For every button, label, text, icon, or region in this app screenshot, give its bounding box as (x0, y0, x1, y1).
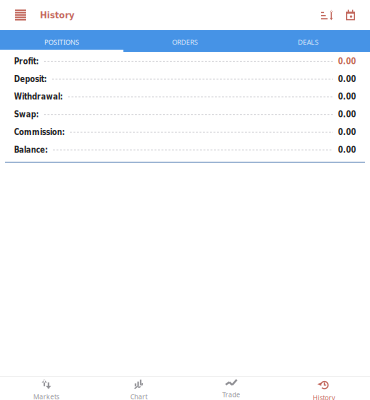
button[interactable]: DEALS (247, 30, 370, 52)
staticText: ORDERS (172, 37, 198, 47)
staticText: Markets (33, 392, 59, 400)
button[interactable]: Trade (185, 377, 277, 400)
staticText: POSITIONS (44, 37, 79, 47)
staticText: 0.00 (338, 145, 356, 155)
staticText: 0.00 (338, 92, 356, 101)
staticText: 0.00 (338, 74, 356, 84)
staticText: 0.00 (338, 57, 356, 66)
staticText: 0.00 (338, 128, 356, 137)
button[interactable]: Chart (92, 377, 185, 400)
staticText: Chart (130, 392, 147, 400)
staticText: Withdrawal: (14, 92, 63, 101)
button[interactable]: Select date (340, 1, 362, 29)
button[interactable]: Markets (0, 377, 92, 400)
staticText: Trade (222, 390, 240, 399)
button[interactable]: Menu (8, 1, 33, 28)
staticText: 0.00 (338, 110, 356, 119)
staticText: History (313, 393, 335, 400)
button[interactable]: ORDERS (123, 30, 247, 52)
staticText: Commission: (14, 128, 65, 137)
staticText: Deposit: (14, 74, 47, 84)
staticText: DEALS (298, 37, 319, 47)
staticText: Balance: (14, 145, 48, 155)
button[interactable]: History (277, 377, 370, 400)
button[interactable]: Sort (314, 1, 340, 29)
staticText: Swap: (14, 110, 39, 119)
staticText: History (40, 10, 74, 20)
staticText: Profit: (14, 57, 39, 66)
button[interactable]: POSITIONS (0, 30, 123, 52)
